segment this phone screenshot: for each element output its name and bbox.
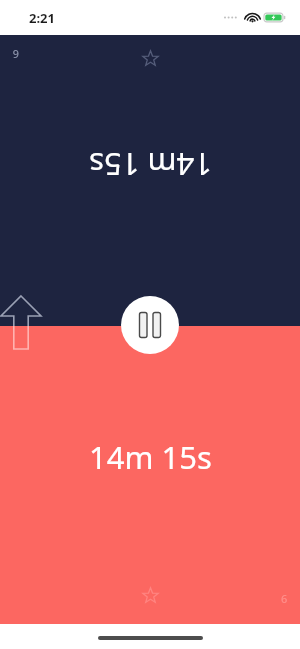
staticText: 2:21 [29, 9, 55, 27]
button[interactable]: Favourite [135, 580, 165, 610]
button[interactable]: 6 [0, 35, 300, 326]
button[interactable]: Swipe up [0, 291, 46, 351]
button[interactable]: Favourite [135, 43, 165, 73]
staticText: 14m 15s [89, 144, 212, 186]
button[interactable]: 14m 15s [0, 326, 300, 624]
button[interactable]: Pause [121, 296, 179, 354]
staticText: 6 [12, 47, 19, 62]
staticText: 14m 15s [89, 436, 212, 478]
staticText: 6 [281, 591, 288, 606]
